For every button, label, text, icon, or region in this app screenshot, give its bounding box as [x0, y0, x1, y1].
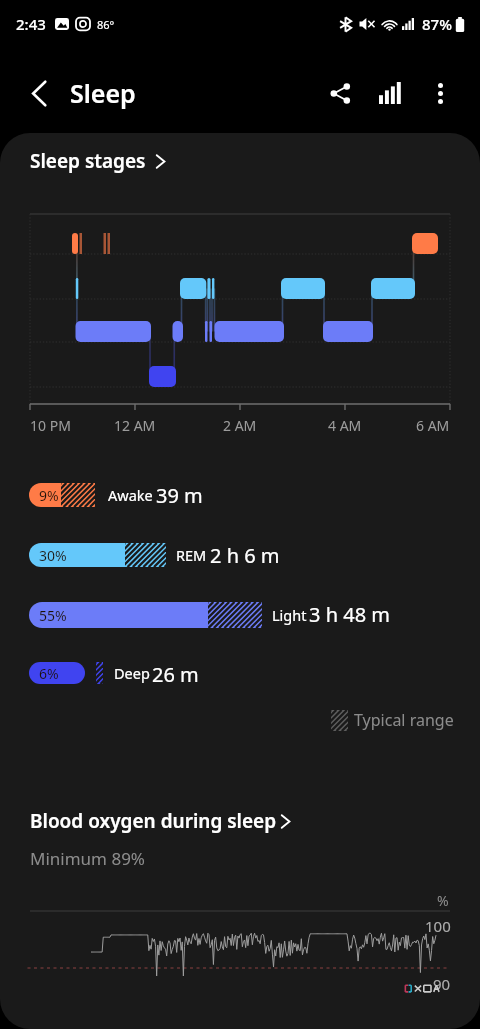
- staticText: 26 m: [152, 661, 199, 683]
- staticText: 6 AM: [416, 416, 450, 434]
- staticText: 86°: [97, 17, 115, 32]
- button[interactable]: Share: [315, 67, 365, 119]
- staticText: 39 m: [156, 482, 203, 506]
- staticText: Sleep: [70, 76, 136, 110]
- staticText: 6%: [39, 664, 59, 683]
- staticText: 100: [425, 916, 451, 936]
- button[interactable]: [19, 474, 359, 516]
- button[interactable]: Statistics: [365, 67, 415, 119]
- staticText: Awake: [108, 485, 153, 505]
- staticText: Blood oxygen during sleep: [30, 808, 277, 834]
- staticText: 4 AM: [328, 416, 362, 434]
- button[interactable]: Blood oxygen during sleep: [20, 802, 301, 840]
- staticText: 2:43: [16, 14, 46, 34]
- button[interactable]: Sleep stages: [20, 142, 176, 180]
- staticText: 30%: [39, 546, 67, 565]
- staticText: Light: [272, 605, 307, 625]
- staticText: Sleep stages: [30, 148, 146, 174]
- staticText: %: [437, 891, 449, 910]
- staticText: 87%: [422, 14, 452, 34]
- staticText: 10 PM: [30, 416, 71, 434]
- button[interactable]: [19, 534, 359, 576]
- button[interactable]: Back: [10, 66, 68, 120]
- staticText: REM: [176, 545, 207, 565]
- staticText: 90: [433, 974, 451, 994]
- staticText: 9%: [39, 486, 59, 505]
- staticText: Typical range: [354, 709, 454, 731]
- staticText: 2 h 6 m: [210, 542, 280, 566]
- staticText: 3 h 48 m: [309, 601, 390, 627]
- staticText: 12 AM: [114, 416, 156, 434]
- button[interactable]: More options: [415, 67, 465, 119]
- staticText: Minimum 89%: [30, 847, 145, 870]
- staticText: 55%: [39, 606, 67, 625]
- button[interactable]: [19, 593, 359, 637]
- staticText: Deep: [114, 663, 150, 683]
- staticText: 2 AM: [223, 416, 257, 434]
- button[interactable]: [19, 653, 359, 693]
